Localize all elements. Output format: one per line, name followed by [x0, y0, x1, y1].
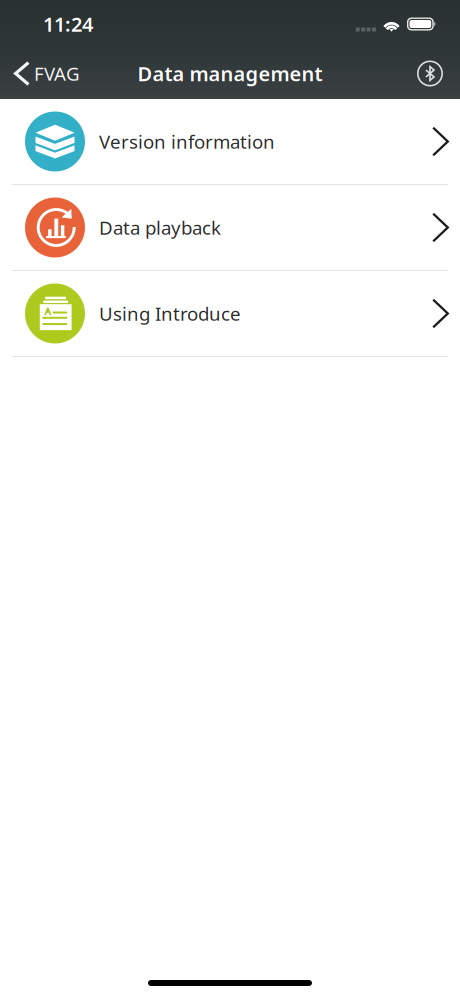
staticText: FVAG: [34, 61, 80, 86]
button[interactable]: FVAG: [0, 53, 90, 94]
staticText: Data playback: [99, 215, 221, 240]
button[interactable]: Data playback: [0, 185, 460, 271]
button[interactable]: Version information: [0, 99, 460, 185]
staticText: Version information: [99, 129, 275, 154]
button[interactable]: Using Introduce: [0, 271, 460, 357]
staticText: Using Introduce: [99, 301, 241, 326]
button[interactable]: Bluetooth: [407, 54, 460, 92]
staticText: Data management: [137, 60, 322, 87]
staticText: 11:24: [43, 11, 93, 37]
